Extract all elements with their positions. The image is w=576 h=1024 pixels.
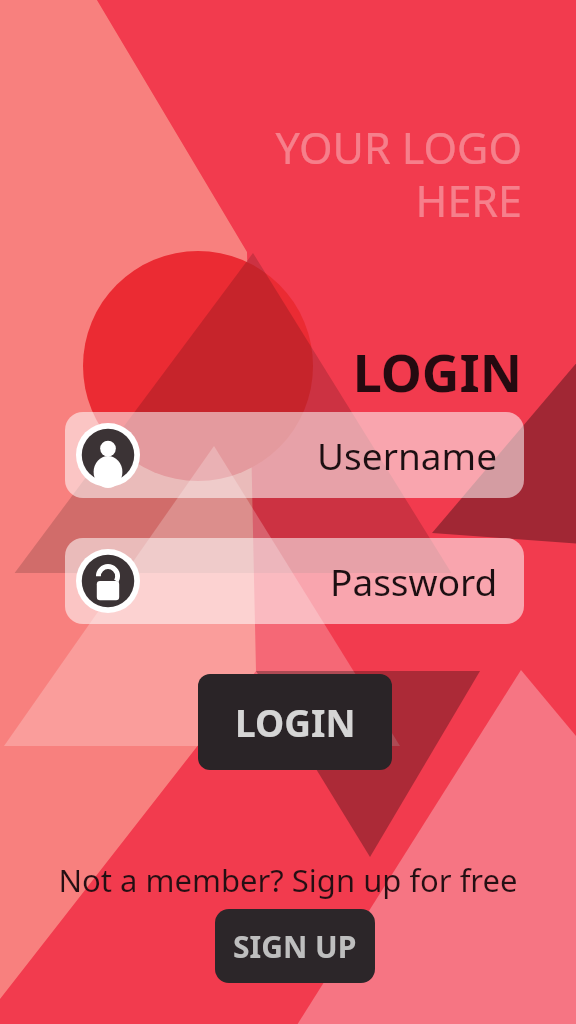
button[interactable]: LOGIN — [198, 674, 392, 770]
button[interactable]: Username — [65, 412, 524, 498]
staticText: LOGIN — [0, 336, 522, 407]
staticText: LOGIN — [235, 697, 356, 747]
other: Password — [76, 549, 140, 613]
staticText: SIGN UP — [233, 926, 357, 967]
button[interactable]: SIGN UP — [215, 909, 375, 983]
staticText: Username — [317, 430, 498, 480]
staticText: YOUR LOGO HERE — [0, 118, 522, 229]
other: Username — [76, 423, 140, 487]
button[interactable]: Not a member? Sign up for free — [0, 859, 576, 901]
staticText: Password — [330, 556, 498, 606]
button[interactable]: Password — [65, 538, 524, 624]
